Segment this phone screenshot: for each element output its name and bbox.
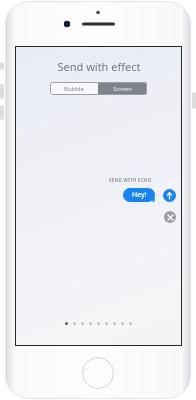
button[interactable]: Send [163, 189, 176, 202]
button[interactable]: Page 5 [97, 322, 100, 325]
button[interactable]: Page 6 [105, 322, 108, 325]
staticText: Hey! [132, 190, 147, 200]
staticText: Bubble [64, 85, 84, 93]
button[interactable]: Page 4 [89, 322, 92, 325]
button[interactable]: Page 1 [65, 322, 68, 325]
button[interactable]: Page 8 [121, 322, 124, 325]
staticText: Screen [113, 85, 133, 93]
staticText: SEND WITH ECHO [109, 177, 152, 183]
button[interactable]: Page 7 [113, 322, 116, 325]
button[interactable]: Page 3 [81, 322, 84, 325]
button[interactable]: Bubble [50, 82, 98, 95]
button[interactable]: Home [82, 357, 114, 389]
button[interactable]: Hey! [123, 188, 155, 202]
button[interactable]: Cancel [164, 211, 176, 223]
button[interactable]: Page 2 [73, 322, 76, 325]
staticText: Send with effect [57, 59, 141, 74]
button[interactable]: Screen [98, 82, 147, 95]
button[interactable]: Page 9 [129, 322, 132, 325]
